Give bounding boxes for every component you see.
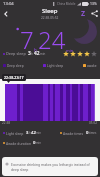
- staticText: 7: [20, 23, 34, 56]
- staticText: 22:38: [2, 121, 11, 125]
- button[interactable]: Share: [89, 8, 100, 19]
- staticText: h: [29, 131, 31, 135]
- staticText: min: [36, 141, 42, 145]
- button[interactable]: Sleep mode: [78, 8, 89, 19]
- staticText: min: [40, 52, 46, 56]
- staticText: Z: [81, 9, 86, 19]
- staticText: 0: [33, 140, 36, 146]
- staticText: min: [36, 131, 42, 135]
- staticText: min: [66, 48, 74, 53]
- staticText: Light sleep: [6, 131, 24, 136]
- staticText: 24: [38, 23, 66, 56]
- staticText: Deep sleep: [6, 51, 26, 56]
- staticText: Light sleep: [47, 64, 64, 68]
- staticText: awake: [87, 64, 97, 68]
- button[interactable]: Back: [0, 8, 12, 20]
- staticText: Sleep: [42, 7, 58, 15]
- staticText: h: [31, 52, 33, 56]
- button[interactable]: Excessive drinking makes you lethargic i…: [2, 157, 98, 176]
- staticText: times: [89, 131, 97, 135]
- staticText: Excessive drinking makes you lethargic i…: [11, 162, 94, 172]
- staticText: 3: [26, 130, 29, 136]
- staticText: 42: [31, 130, 36, 136]
- staticText: China Mobile: [57, 2, 76, 6]
- staticText: Awake duration: [6, 141, 31, 146]
- staticText: 13:04: [3, 1, 14, 7]
- staticText: 22:38-05:52: [41, 16, 59, 20]
- staticText: 22:38-23:17: [4, 75, 24, 80]
- staticText: h: [34, 47, 37, 53]
- staticText: 42: [34, 50, 40, 57]
- staticText: Deep sleep: [7, 64, 24, 68]
- staticText: Awake times: [63, 131, 84, 136]
- staticText: 3: [28, 50, 31, 57]
- staticText: 05:52: [89, 121, 98, 125]
- staticText: 13%: [90, 1, 97, 6]
- staticText: 0: [86, 130, 89, 136]
